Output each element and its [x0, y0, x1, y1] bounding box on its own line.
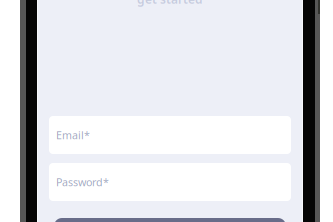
- staticText: Password*: [56, 175, 109, 189]
- button[interactable]: Email*: [49, 116, 291, 154]
- button[interactable]: Password*: [49, 163, 291, 201]
- button[interactable]: [49, 218, 291, 222]
- staticText: get started: [137, 0, 203, 7]
- staticText: Email*: [56, 128, 90, 142]
